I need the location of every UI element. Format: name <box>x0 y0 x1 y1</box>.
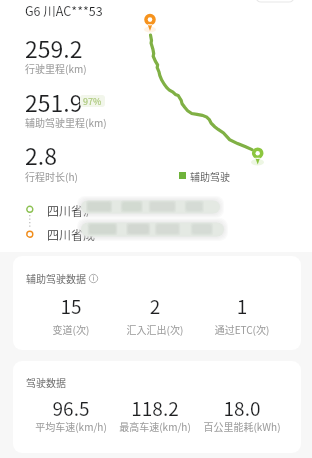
staticText: 百公里能耗(kWh) <box>199 419 285 433</box>
staticText: 1 <box>199 292 285 320</box>
button[interactable]: 驾驶数据 <box>13 361 301 453</box>
button[interactable]: 辅助驾驶数据 <box>13 256 301 350</box>
staticText: 通过ETC(次) <box>199 322 285 336</box>
staticText: 辅助驾驶数据 <box>26 271 86 285</box>
staticText: 辅助驾驶 <box>190 169 230 183</box>
staticText: 辅助驾驶里程(km) <box>25 115 107 129</box>
staticText: 四川省泸 <box>47 202 96 219</box>
button[interactable]: 四川省泸 <box>47 202 96 219</box>
other: Info <box>89 274 98 283</box>
staticText: G6 川AC***53 <box>25 1 103 19</box>
staticText: 变道(次) <box>28 322 114 336</box>
staticText: 18.0 <box>199 394 285 422</box>
staticText: 97% <box>83 95 102 107</box>
staticText: 最高车速(km/h) <box>112 419 198 433</box>
staticText: 四川省成 <box>47 226 96 243</box>
staticText: 2.8 <box>25 138 57 171</box>
staticText: 259.2 <box>25 31 83 64</box>
staticText: 行程时长(h) <box>25 169 78 183</box>
staticText: 96.5 <box>28 394 114 422</box>
staticText: 15 <box>28 292 114 320</box>
staticText: 2 <box>112 292 198 320</box>
staticText: 行驶里程(km) <box>25 61 87 75</box>
staticText: 驾驶数据 <box>26 375 66 389</box>
staticText: 251.9 <box>25 85 83 118</box>
staticText: 汇入汇出(次) <box>112 322 198 336</box>
staticText: 118.2 <box>112 394 198 422</box>
staticText: 平均车速(km/h) <box>28 419 114 433</box>
button[interactable]: 四川省成 <box>47 226 96 243</box>
